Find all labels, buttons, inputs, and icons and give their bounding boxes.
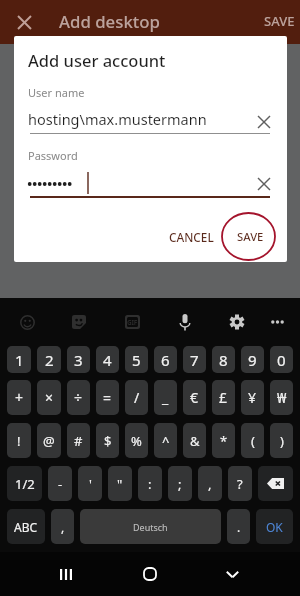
staticText: + (15, 388, 24, 407)
staticText: , (61, 519, 65, 535)
button[interactable]: Backspace (258, 466, 293, 501)
button[interactable]: # (67, 423, 90, 458)
staticText: ( (251, 432, 255, 450)
button[interactable]: - (48, 466, 72, 501)
button[interactable]: SAVE (231, 223, 270, 250)
staticText: ! (17, 432, 21, 450)
staticText: SAVE (264, 12, 295, 30)
staticText: ? (237, 475, 243, 493)
staticText: @ (43, 432, 55, 450)
button[interactable]: @ (37, 423, 61, 458)
button[interactable]: , (198, 466, 222, 501)
staticText: ÷ (74, 388, 83, 407)
button[interactable]: 9 (241, 346, 264, 373)
staticText: 3 (74, 350, 83, 370)
button[interactable]: _ (154, 380, 177, 415)
staticText: ₩ (277, 388, 287, 407)
button[interactable]: 1/2 (7, 466, 42, 501)
button[interactable]: , (51, 509, 74, 544)
button[interactable]: ₩ (270, 380, 293, 415)
staticText: 0 (277, 350, 286, 370)
button[interactable]: 8 (212, 346, 235, 373)
button[interactable]: = (96, 380, 119, 415)
staticText: 7 (190, 350, 199, 370)
staticText: - (58, 475, 63, 493)
button[interactable]: Recents (51, 559, 81, 589)
button[interactable]: Close (10, 8, 38, 36)
button[interactable]: ÷ (67, 380, 90, 415)
button[interactable]: OK (256, 509, 293, 544)
staticText: = (103, 388, 112, 407)
button[interactable]: Stickers (65, 308, 93, 336)
button[interactable]: ( (241, 423, 264, 458)
staticText: × (45, 388, 54, 407)
button[interactable]: % (125, 423, 148, 458)
button[interactable]: ^ (154, 423, 177, 458)
button[interactable]: £ (212, 380, 235, 415)
button[interactable]: 7 (183, 346, 206, 373)
button[interactable]: 5 (125, 346, 148, 373)
staticText: 9 (248, 350, 257, 370)
staticText: OK (266, 519, 283, 535)
button[interactable]: Emoji (13, 308, 41, 336)
staticText: / (134, 388, 140, 407)
button[interactable]: * (212, 423, 235, 458)
button[interactable]: . (227, 509, 250, 544)
staticText: 6 (161, 350, 170, 370)
button[interactable]: SAVE (259, 4, 300, 38)
staticText: 4 (103, 350, 112, 370)
button[interactable]: ABC (7, 509, 45, 544)
button[interactable]: × (37, 380, 61, 415)
button[interactable]: CANCEL (163, 223, 220, 251)
button[interactable]: ! (7, 423, 31, 458)
button[interactable]: ' (78, 466, 102, 501)
button[interactable]: / (125, 380, 148, 415)
staticText: Deutsch (133, 521, 168, 533)
button[interactable]: 1 (7, 346, 31, 373)
button[interactable]: ; (168, 466, 192, 501)
button[interactable]: $ (96, 423, 119, 458)
button[interactable]: : (138, 466, 162, 501)
staticText: hosting\max.mustermann (28, 109, 207, 129)
staticText: ; (178, 475, 182, 493)
button[interactable]: 2 (37, 346, 61, 373)
staticText: ' (89, 475, 92, 493)
button[interactable]: 3 (67, 346, 90, 373)
staticText: GIF (127, 318, 138, 327)
staticText: € (190, 388, 199, 407)
button[interactable]: € (183, 380, 206, 415)
staticText: 2 (45, 350, 54, 370)
staticText: $ (104, 432, 112, 450)
button[interactable]: ) (270, 423, 293, 458)
staticText: 1/2 (15, 475, 35, 493)
staticText: CANCEL (169, 229, 214, 245)
button[interactable]: GIF (118, 308, 146, 336)
button[interactable]: 6 (154, 346, 177, 373)
staticText: _ (162, 388, 169, 407)
button[interactable]: " (108, 466, 132, 501)
button[interactable]: Deutsch (80, 509, 221, 544)
staticText: 5 (132, 350, 141, 370)
button[interactable]: 0 (270, 346, 293, 373)
button[interactable]: Keyboard settings (223, 308, 251, 336)
button[interactable]: 4 (96, 346, 119, 373)
button[interactable]: Hide keyboard (217, 559, 247, 589)
staticText: User name (28, 85, 85, 100)
button[interactable]: & (183, 423, 206, 458)
button[interactable]: Voice input (171, 308, 199, 336)
button[interactable]: ? (228, 466, 252, 501)
staticText: ¥ (248, 388, 257, 407)
button[interactable]: + (7, 380, 31, 415)
staticText: SAVE (237, 229, 264, 244)
button[interactable]: More options (263, 308, 291, 336)
button[interactable]: Clear password (252, 172, 276, 196)
staticText: Password (28, 148, 78, 163)
button[interactable]: ¥ (241, 380, 264, 415)
button[interactable]: Home (135, 559, 165, 589)
staticText: 8 (219, 350, 228, 370)
staticText: " (117, 475, 123, 493)
staticText: ^ (162, 432, 170, 450)
staticText: . (237, 519, 241, 535)
button[interactable]: Clear user name (252, 110, 276, 134)
staticText: : (148, 475, 152, 493)
